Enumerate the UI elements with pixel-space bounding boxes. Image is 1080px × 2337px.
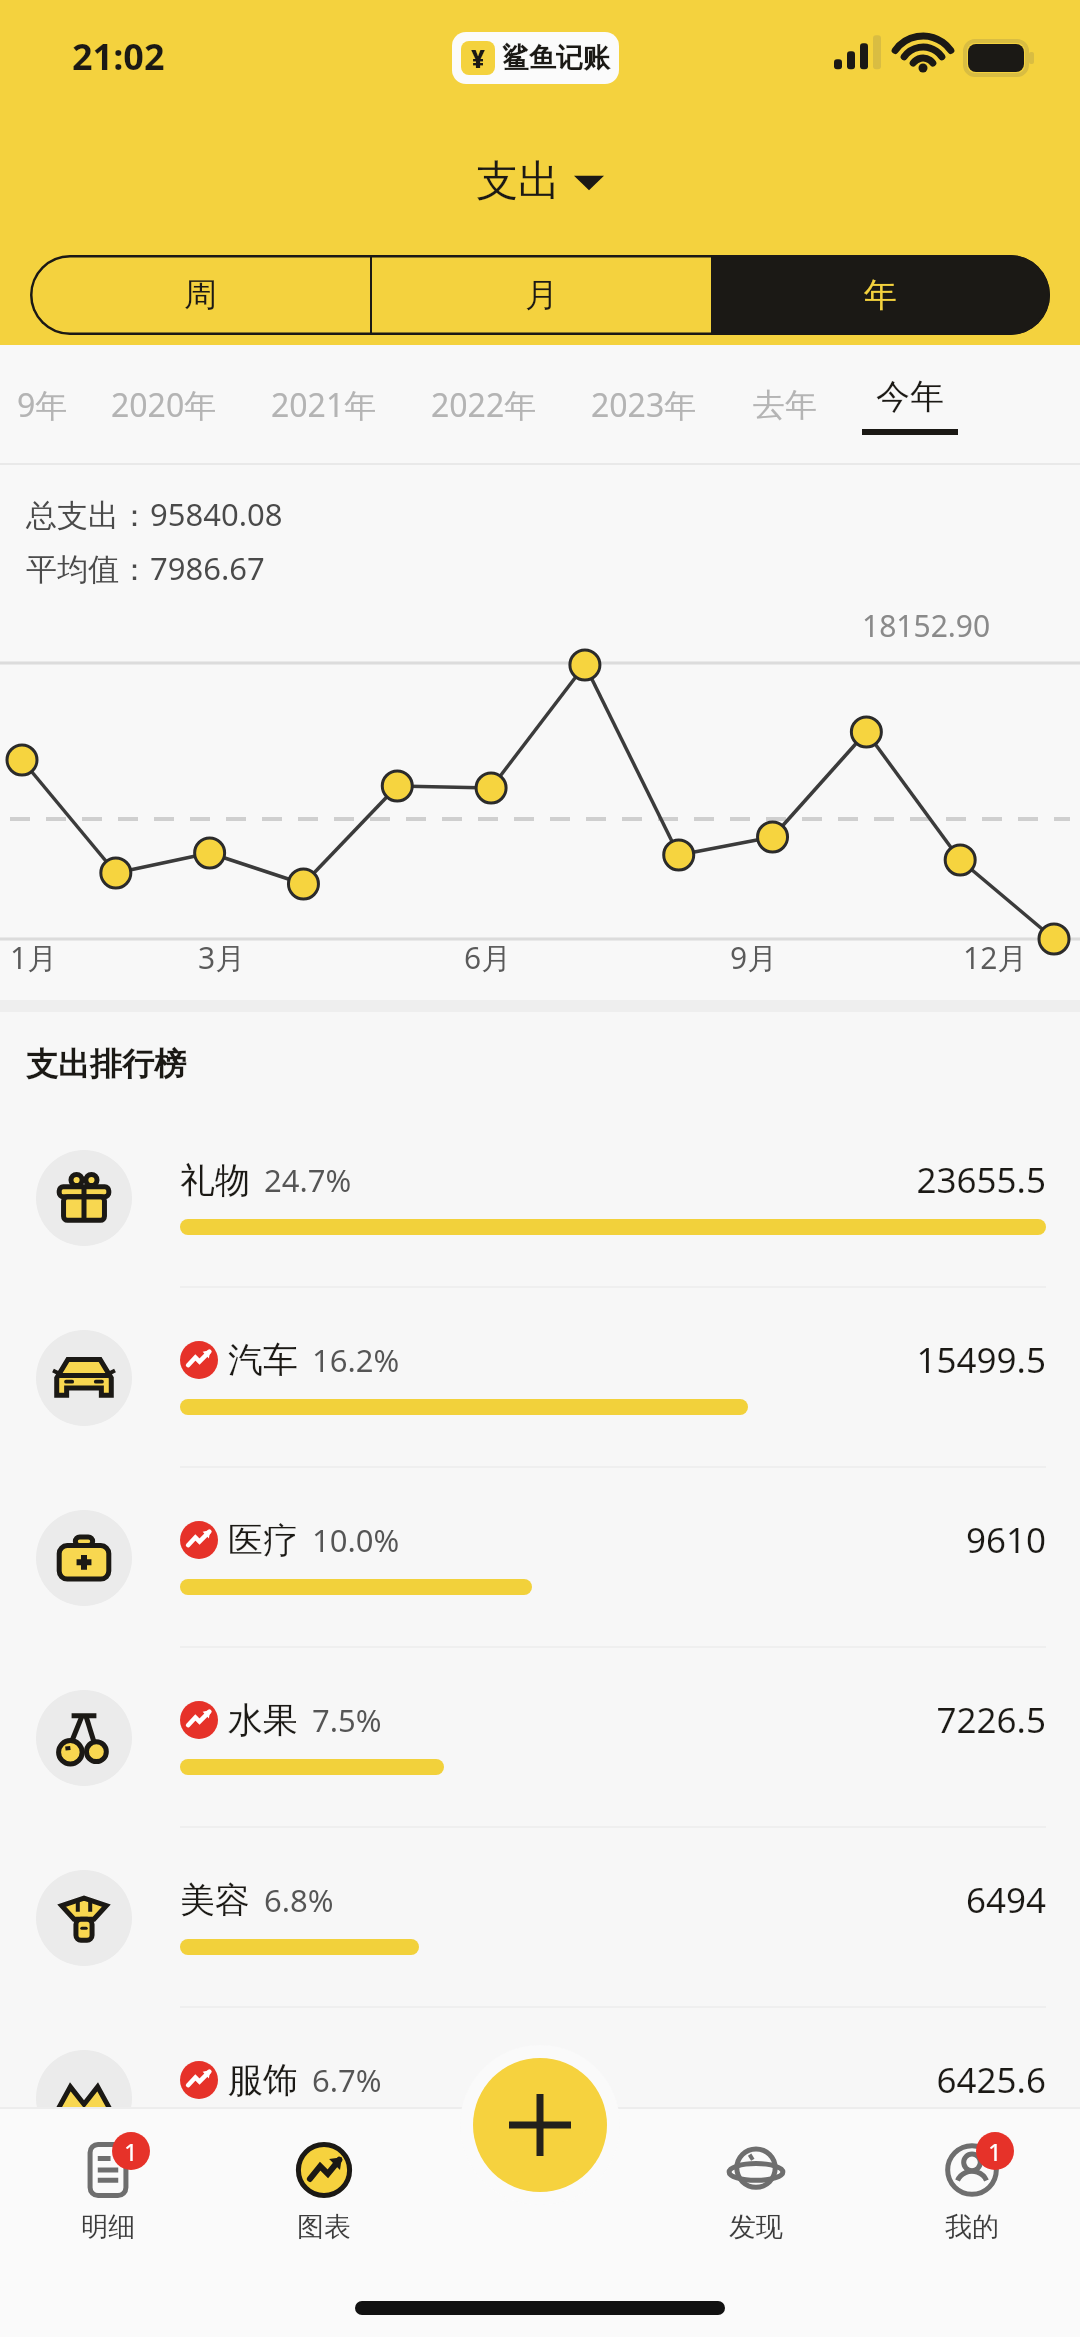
button[interactable]: 月 xyxy=(372,255,711,335)
staticText: 医疗 xyxy=(228,1518,298,1562)
staticText: 7.5% xyxy=(312,1699,382,1741)
staticText: 1 xyxy=(124,2135,138,2168)
staticText: 23655.5 xyxy=(916,1156,1046,1204)
staticText: 支出 xyxy=(476,155,560,208)
staticText: 美容 xyxy=(180,1878,250,1922)
staticText: 6.8% xyxy=(264,1879,334,1921)
staticText: 鲨鱼记账 xyxy=(502,41,610,75)
staticText: 平均值：7986.67 xyxy=(26,547,265,589)
staticText: 支出排行榜 xyxy=(26,1044,186,1084)
staticText: 今年 xyxy=(876,375,944,418)
staticText: 6494 xyxy=(965,1876,1046,1924)
button[interactable]: 去年 xyxy=(724,345,846,465)
staticText: 6.7% xyxy=(312,2059,382,2101)
button[interactable]: 2021年 xyxy=(244,345,404,465)
button[interactable]: 服饰 xyxy=(0,2008,1080,2188)
staticText: 1 xyxy=(988,2135,1002,2168)
staticText: 1月 xyxy=(10,937,58,978)
button[interactable]: 医疗 xyxy=(0,1468,1080,1648)
staticText: 3月 xyxy=(198,937,246,978)
button[interactable]: 图表 xyxy=(216,2107,432,2275)
button[interactable]: 美容 xyxy=(0,1828,1080,2008)
staticText: 6425.6 xyxy=(936,2056,1046,2104)
button[interactable]: 1 xyxy=(864,2107,1080,2275)
staticText: 汽车 xyxy=(228,1338,298,1382)
button[interactable]: 9年 xyxy=(0,345,84,465)
button[interactable]: 1 xyxy=(0,2107,216,2275)
button[interactable]: 礼物 xyxy=(0,1108,1080,1288)
staticText: 12月 xyxy=(963,937,1028,978)
button[interactable]: 2020年 xyxy=(84,345,244,465)
staticText: 16.2% xyxy=(312,1339,400,1381)
staticText: 周 xyxy=(184,274,217,316)
staticText: 图表 xyxy=(297,2210,351,2244)
button[interactable]: 水果 xyxy=(0,1648,1080,1828)
staticText: 9年 xyxy=(17,383,68,427)
staticText: 21:02 xyxy=(72,32,165,81)
staticText: ¥ xyxy=(471,42,486,75)
staticText: 24.7% xyxy=(264,1159,352,1201)
button[interactable]: 记账 xyxy=(473,2058,607,2192)
staticText: 去年 xyxy=(753,385,817,425)
staticText: 总支出：95840.08 xyxy=(26,493,283,535)
button[interactable]: 2023年 xyxy=(564,345,724,465)
button[interactable]: 支出 xyxy=(0,155,1080,208)
staticText: 9月 xyxy=(730,937,778,978)
button[interactable]: 发现 xyxy=(648,2107,864,2275)
staticText: 水果 xyxy=(228,1698,298,1742)
staticText: 10.0% xyxy=(312,1519,400,1561)
staticText: 7226.5 xyxy=(936,1696,1046,1744)
staticText: 月 xyxy=(525,274,558,316)
staticText: 6月 xyxy=(464,937,512,978)
button[interactable]: 年 xyxy=(711,255,1050,335)
staticText: 服饰 xyxy=(228,2058,298,2102)
staticText: 记账 xyxy=(513,2163,567,2197)
button[interactable]: 今年 xyxy=(846,345,974,465)
staticText: 18152.90 xyxy=(862,605,991,646)
staticText: 年 xyxy=(864,274,897,316)
staticText: 明细 xyxy=(81,2210,135,2244)
staticText: 我的 xyxy=(945,2210,999,2244)
button[interactable]: 周 xyxy=(30,255,370,335)
staticText: 2022年 xyxy=(431,383,537,427)
button[interactable]: 2022年 xyxy=(404,345,564,465)
staticText: 发现 xyxy=(729,2210,783,2244)
staticText: 15499.5 xyxy=(916,1336,1046,1384)
staticText: 2021年 xyxy=(271,383,377,427)
staticText: 9610 xyxy=(965,1516,1046,1564)
staticText: 2023年 xyxy=(591,383,697,427)
button[interactable]: 汽车 xyxy=(0,1288,1080,1468)
staticText: 2020年 xyxy=(111,383,217,427)
staticText: 礼物 xyxy=(180,1158,250,1202)
